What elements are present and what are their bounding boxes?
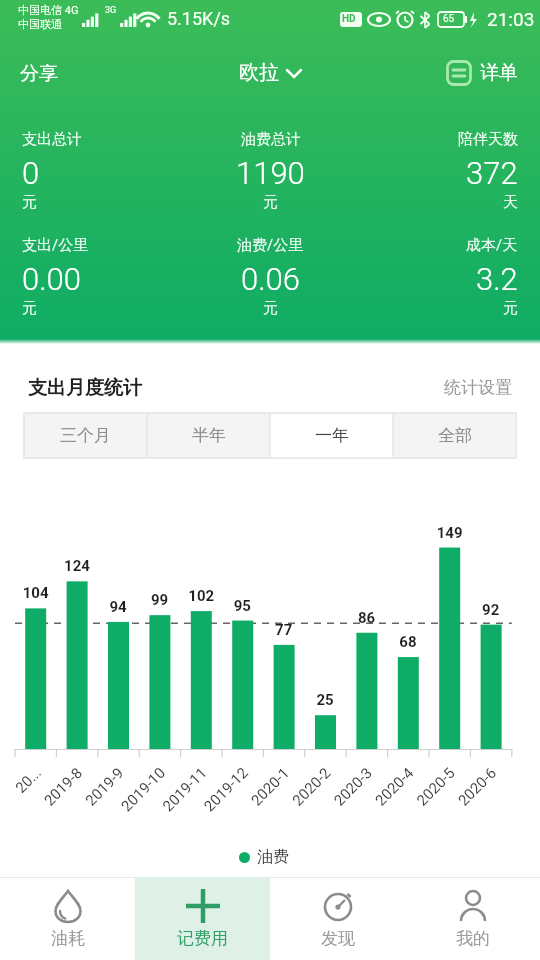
staticText: 元	[263, 299, 278, 318]
staticText: 详单	[480, 61, 518, 85]
staticText: 天	[503, 193, 518, 212]
staticText: 21:03	[487, 8, 535, 30]
button[interactable]: 统计设置	[444, 377, 512, 398]
button[interactable]: 我的	[405, 877, 540, 960]
button[interactable]: 详单	[446, 60, 518, 86]
staticText: 0	[22, 155, 40, 191]
staticText: 3G	[105, 5, 117, 16]
staticText: 三个月	[60, 425, 111, 446]
staticText: 元	[22, 299, 37, 318]
staticText: 元	[263, 193, 278, 212]
staticText: 5.15K/s	[167, 8, 231, 29]
staticText: 支出总计	[22, 130, 82, 149]
staticText: HD	[342, 13, 356, 25]
staticText: 中国电信 4G	[18, 3, 79, 17]
staticText: 支出月度统计	[28, 376, 142, 400]
button[interactable]: 三个月	[24, 413, 147, 458]
staticText: 全部	[438, 425, 472, 446]
button[interactable]: 欧拉	[239, 60, 305, 85]
button[interactable]: 分享	[20, 62, 58, 86]
staticText: 1190	[236, 155, 305, 191]
staticText: 油费/公里	[237, 236, 304, 255]
staticText: 元	[503, 299, 518, 318]
staticText: 0.06	[241, 261, 300, 297]
button[interactable]: 全部	[393, 413, 516, 458]
staticText: 一年	[315, 425, 349, 446]
staticText: 元	[22, 193, 37, 212]
button[interactable]: 半年	[147, 413, 270, 458]
button[interactable]: 发现	[270, 877, 405, 960]
button[interactable]: 油耗	[0, 877, 135, 960]
staticText: 372	[466, 155, 518, 191]
staticText: 0.00	[22, 261, 81, 297]
staticText: 成本/天	[466, 236, 518, 255]
staticText: 发现	[321, 928, 355, 949]
staticText: 我的	[456, 928, 490, 949]
staticText: 记费用	[177, 928, 228, 949]
staticText: 半年	[192, 425, 226, 446]
staticText: 油费总计	[241, 130, 301, 149]
staticText: 3.2	[476, 261, 518, 297]
staticText: 欧拉	[239, 60, 279, 85]
staticText: 65	[443, 13, 455, 25]
staticText: 陪伴天数	[458, 130, 518, 149]
staticText: 支出/公里	[22, 236, 89, 255]
button[interactable]: 一年	[270, 413, 393, 458]
button[interactable]: 记费用	[135, 877, 270, 960]
staticText: 中国联通	[18, 17, 62, 31]
staticText: 油费	[257, 847, 289, 867]
staticText: 油耗	[51, 928, 85, 949]
